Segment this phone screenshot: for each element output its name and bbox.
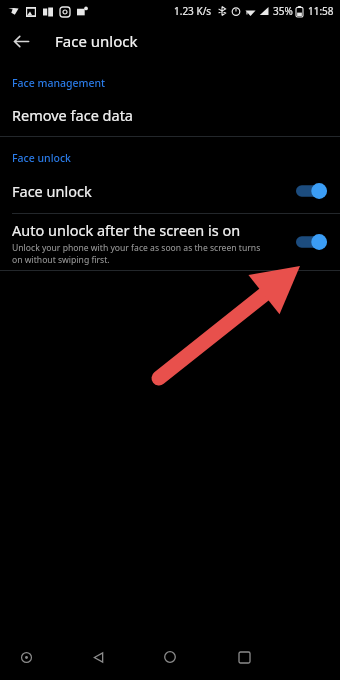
button[interactable]: Back [7,27,35,55]
button[interactable]: Recent apps [231,644,257,670]
staticText: Face unlock [55,31,138,51]
staticText: 35% [273,4,293,18]
button[interactable] [296,180,330,202]
staticText: Remove face data [12,105,134,125]
staticText: Face unlock [12,151,71,165]
staticText: Auto unlock after the screen is on [12,220,241,240]
button[interactable] [296,231,330,253]
staticText: 1.23 K/s [174,4,212,18]
staticText: 11:58 [308,4,334,18]
button[interactable]: Back [85,644,111,670]
button[interactable]: Face unlock [0,169,340,213]
button[interactable]: Home [157,644,183,670]
staticText: Face management [12,76,106,90]
staticText: Unlock your phone with your face as soon… [12,242,266,265]
staticText: Face unlock [12,181,92,201]
button[interactable]: Remove face data [0,94,340,136]
button[interactable]: Screenshot [13,644,39,670]
button[interactable]: Auto unlock after the screen is on [0,214,340,270]
